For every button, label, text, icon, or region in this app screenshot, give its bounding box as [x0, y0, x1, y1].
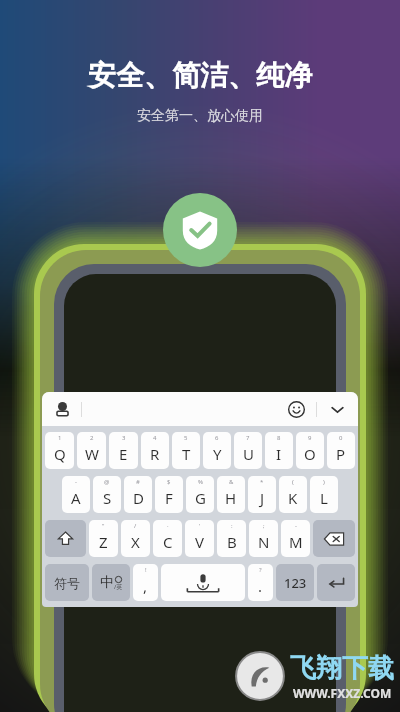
- staticText: 7: [246, 434, 250, 442]
- staticText: ): [323, 478, 325, 486]
- button[interactable]: %: [186, 476, 214, 513]
- staticText: ': [199, 522, 201, 530]
- staticText: 符号: [54, 575, 80, 591]
- staticText: &: [229, 478, 234, 486]
- staticText: N: [258, 532, 270, 552]
- staticText: J: [260, 488, 265, 508]
- staticText: H: [225, 488, 237, 508]
- staticText: 0: [339, 434, 343, 442]
- staticText: #: [136, 478, 140, 486]
- staticText: $: [167, 478, 171, 486]
- button[interactable]: 安全防护: [163, 193, 237, 267]
- button[interactable]: @: [93, 476, 121, 513]
- staticText: ": [102, 522, 105, 530]
- staticText: W: [85, 444, 99, 464]
- button[interactable]: $: [155, 476, 183, 513]
- staticText: T: [182, 444, 191, 464]
- button[interactable]: 0: [327, 432, 355, 469]
- button[interactable]: 收起键盘: [325, 397, 349, 421]
- staticText: R: [150, 444, 160, 464]
- button[interactable]: 9: [296, 432, 324, 469]
- button[interactable]: Shift: [45, 520, 86, 557]
- button[interactable]: 空格: [161, 564, 245, 601]
- staticText: !: [145, 566, 147, 574]
- staticText: X: [131, 532, 140, 552]
- staticText: 中: [100, 574, 114, 592]
- button[interactable]: !: [133, 564, 158, 601]
- staticText: K: [288, 488, 298, 508]
- staticText: 6: [215, 434, 219, 442]
- staticText: Q: [54, 444, 66, 464]
- button[interactable]: -: [62, 476, 90, 513]
- button[interactable]: 6: [203, 432, 231, 469]
- button[interactable]: ': [185, 520, 214, 557]
- button[interactable]: 回车: [317, 564, 355, 601]
- staticText: 安全、简洁、纯净: [88, 58, 312, 93]
- staticText: 1: [58, 434, 62, 442]
- staticText: ,: [143, 576, 148, 596]
- button[interactable]: #: [124, 476, 152, 513]
- staticText: O: [304, 444, 316, 464]
- button[interactable]: &: [217, 476, 245, 513]
- button[interactable]: 输入法切换: [51, 398, 73, 420]
- staticText: E: [119, 444, 128, 464]
- staticText: S: [103, 488, 112, 508]
- staticText: L: [320, 488, 328, 508]
- staticText: 8: [277, 434, 281, 442]
- button[interactable]: 123: [276, 564, 314, 601]
- staticText: -: [75, 478, 77, 486]
- staticText: @: [104, 478, 110, 486]
- staticText: 飞翔下载: [290, 652, 394, 685]
- button[interactable]: :: [217, 520, 246, 557]
- button[interactable]: 1: [45, 432, 74, 469]
- button[interactable]: ·: [153, 520, 182, 557]
- staticText: M: [289, 532, 303, 552]
- button[interactable]: 2: [77, 432, 106, 469]
- button[interactable]: 3: [109, 432, 138, 469]
- staticText: A: [71, 488, 81, 508]
- staticText: C: [163, 532, 173, 552]
- staticText: -: [295, 522, 297, 530]
- button[interactable]: ;: [249, 520, 278, 557]
- button[interactable]: 5: [172, 432, 200, 469]
- staticText: /英: [114, 583, 123, 591]
- staticText: 2: [90, 434, 94, 442]
- staticText: ·: [167, 522, 169, 530]
- button[interactable]: ?: [248, 564, 273, 601]
- staticText: U: [243, 444, 254, 464]
- staticText: B: [227, 532, 237, 552]
- staticText: 123: [284, 574, 307, 592]
- staticText: *: [260, 478, 264, 486]
- button[interactable]: (: [279, 476, 307, 513]
- staticText: I: [276, 444, 282, 464]
- button[interactable]: 删除: [313, 520, 355, 557]
- button[interactable]: 中英文切换: [92, 564, 130, 601]
- staticText: (: [292, 478, 294, 486]
- staticText: P: [336, 444, 346, 464]
- staticText: F: [165, 488, 173, 508]
- button[interactable]: -: [281, 520, 310, 557]
- staticText: 3: [122, 434, 126, 442]
- button[interactable]: ": [89, 520, 118, 557]
- staticText: WWW.FXXZ.COM: [293, 685, 392, 701]
- staticText: Y: [213, 444, 222, 464]
- button[interactable]: 7: [234, 432, 262, 469]
- button[interactable]: 8: [265, 432, 293, 469]
- staticText: :: [231, 522, 233, 530]
- staticText: .: [258, 576, 263, 596]
- staticText: Z: [99, 532, 108, 552]
- staticText: D: [133, 488, 144, 508]
- staticText: /: [134, 522, 137, 530]
- staticText: 9: [308, 434, 312, 442]
- staticText: 5: [184, 434, 188, 442]
- button[interactable]: ): [310, 476, 338, 513]
- staticText: 4: [153, 434, 157, 442]
- button[interactable]: *: [248, 476, 276, 513]
- button[interactable]: 表情: [284, 397, 308, 421]
- button[interactable]: /: [121, 520, 150, 557]
- button[interactable]: 符号: [45, 564, 89, 601]
- button[interactable]: 4: [141, 432, 169, 469]
- staticText: 安全第一、放心使用: [137, 107, 263, 125]
- staticText: %: [198, 478, 203, 486]
- staticText: ?: [259, 566, 262, 574]
